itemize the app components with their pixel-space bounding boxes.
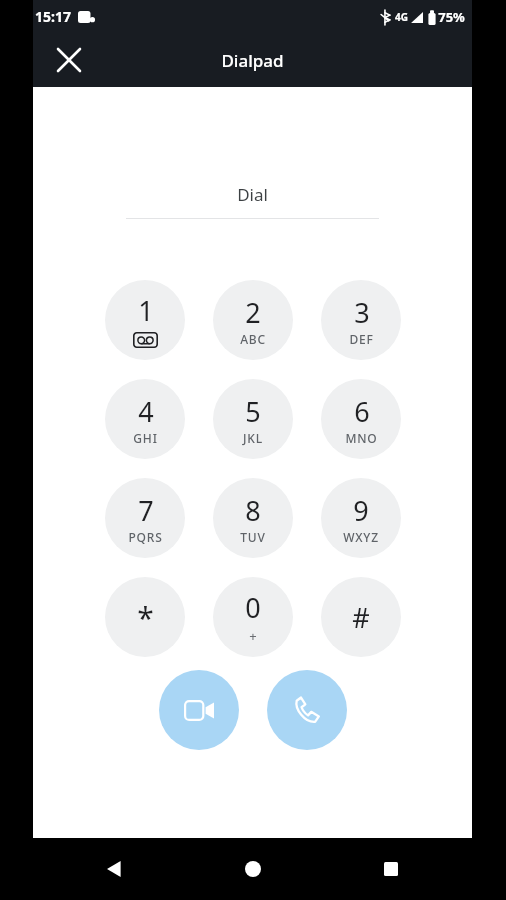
staticText: * <box>137 597 154 638</box>
staticText: 3 <box>354 294 370 331</box>
button[interactable]: * <box>105 577 185 657</box>
staticText: 2 <box>245 294 261 331</box>
staticText: 1 <box>138 292 154 329</box>
staticText: # <box>352 599 370 636</box>
button[interactable]: Home <box>230 846 276 892</box>
button[interactable]: Recents <box>368 846 414 892</box>
staticText: 7 <box>138 492 154 529</box>
button[interactable]: 0 <box>213 577 293 657</box>
button[interactable]: 5 <box>213 379 293 459</box>
staticText: PQRS <box>128 529 163 545</box>
button[interactable]: 2 <box>213 280 293 360</box>
button[interactable]: Back <box>92 846 138 892</box>
staticText: GHI <box>133 430 158 446</box>
staticText: + <box>249 627 257 645</box>
button[interactable]: 4 <box>105 379 185 459</box>
staticText: 15:17 <box>35 7 71 26</box>
button[interactable]: Close <box>47 38 91 82</box>
button[interactable]: 8 <box>213 478 293 558</box>
staticText: 4 <box>138 393 154 430</box>
staticText: 5 <box>245 393 261 430</box>
staticText: ABC <box>240 331 266 347</box>
staticText: WXYZ <box>343 529 379 545</box>
staticText: 9 <box>353 492 369 529</box>
staticText: TUV <box>240 529 266 545</box>
button[interactable]: 7 <box>105 478 185 558</box>
staticText: 8 <box>245 492 261 529</box>
button[interactable]: 3 <box>321 280 401 360</box>
button[interactable]: Call <box>267 670 347 750</box>
staticText: 0 <box>245 589 261 626</box>
staticText: 6 <box>354 393 370 430</box>
staticText: Dial <box>237 183 268 206</box>
button[interactable]: 6 <box>321 379 401 459</box>
staticText: Dialpad <box>221 49 284 72</box>
button[interactable]: # <box>321 577 401 657</box>
staticText: DEF <box>349 331 374 347</box>
staticText: 75% <box>438 8 465 26</box>
button[interactable]: Video call <box>159 670 239 750</box>
button[interactable]: 9 <box>321 478 401 558</box>
staticText: 4G <box>395 10 408 24</box>
button[interactable]: 1 <box>105 280 185 360</box>
staticText: JKL <box>243 430 263 446</box>
staticText: MNO <box>345 430 378 446</box>
